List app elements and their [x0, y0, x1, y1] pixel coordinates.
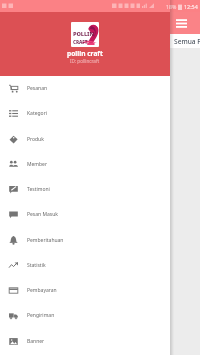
staticText: Kategori — [27, 110, 47, 117]
staticText: CRAFT — [73, 39, 88, 45]
staticText: Pembayaran — [27, 287, 57, 294]
staticText: Pemberitahuan — [27, 237, 64, 244]
staticText: POLLIN — [73, 30, 95, 38]
staticText: Semua Pesanan — [174, 37, 200, 46]
staticText: Pesanan — [27, 85, 48, 92]
button[interactable]: Open navigation drawer — [176, 19, 187, 28]
staticText: Pesan Masuk — [27, 211, 58, 218]
staticText: 18% — [166, 3, 177, 10]
staticText: Member — [27, 161, 47, 168]
button[interactable]: Pengiriman — [0, 303, 170, 328]
button[interactable]: Banner — [0, 329, 170, 354]
staticText: Banner — [27, 338, 45, 345]
button[interactable]: Testimoni — [0, 177, 170, 202]
staticText: Testimoni — [27, 186, 50, 193]
button[interactable]: Produk — [0, 127, 170, 152]
staticText: Statistik — [27, 262, 46, 269]
staticText: Produk — [27, 136, 44, 143]
staticText: 12:54 — [184, 3, 198, 10]
button[interactable]: Kategori — [0, 101, 170, 126]
button[interactable]: Pemberitahuan — [0, 228, 170, 253]
staticText: ID: pollincraft — [70, 58, 100, 64]
button[interactable]: Pembayaran — [0, 278, 170, 303]
button[interactable]: Statistik — [0, 253, 170, 278]
staticText: Pengiriman — [27, 312, 55, 319]
button[interactable]: Pesan Masuk — [0, 202, 170, 227]
button[interactable]: Member — [0, 152, 170, 177]
staticText: pollin craft — [67, 49, 103, 58]
button[interactable]: Pesanan — [0, 76, 170, 101]
